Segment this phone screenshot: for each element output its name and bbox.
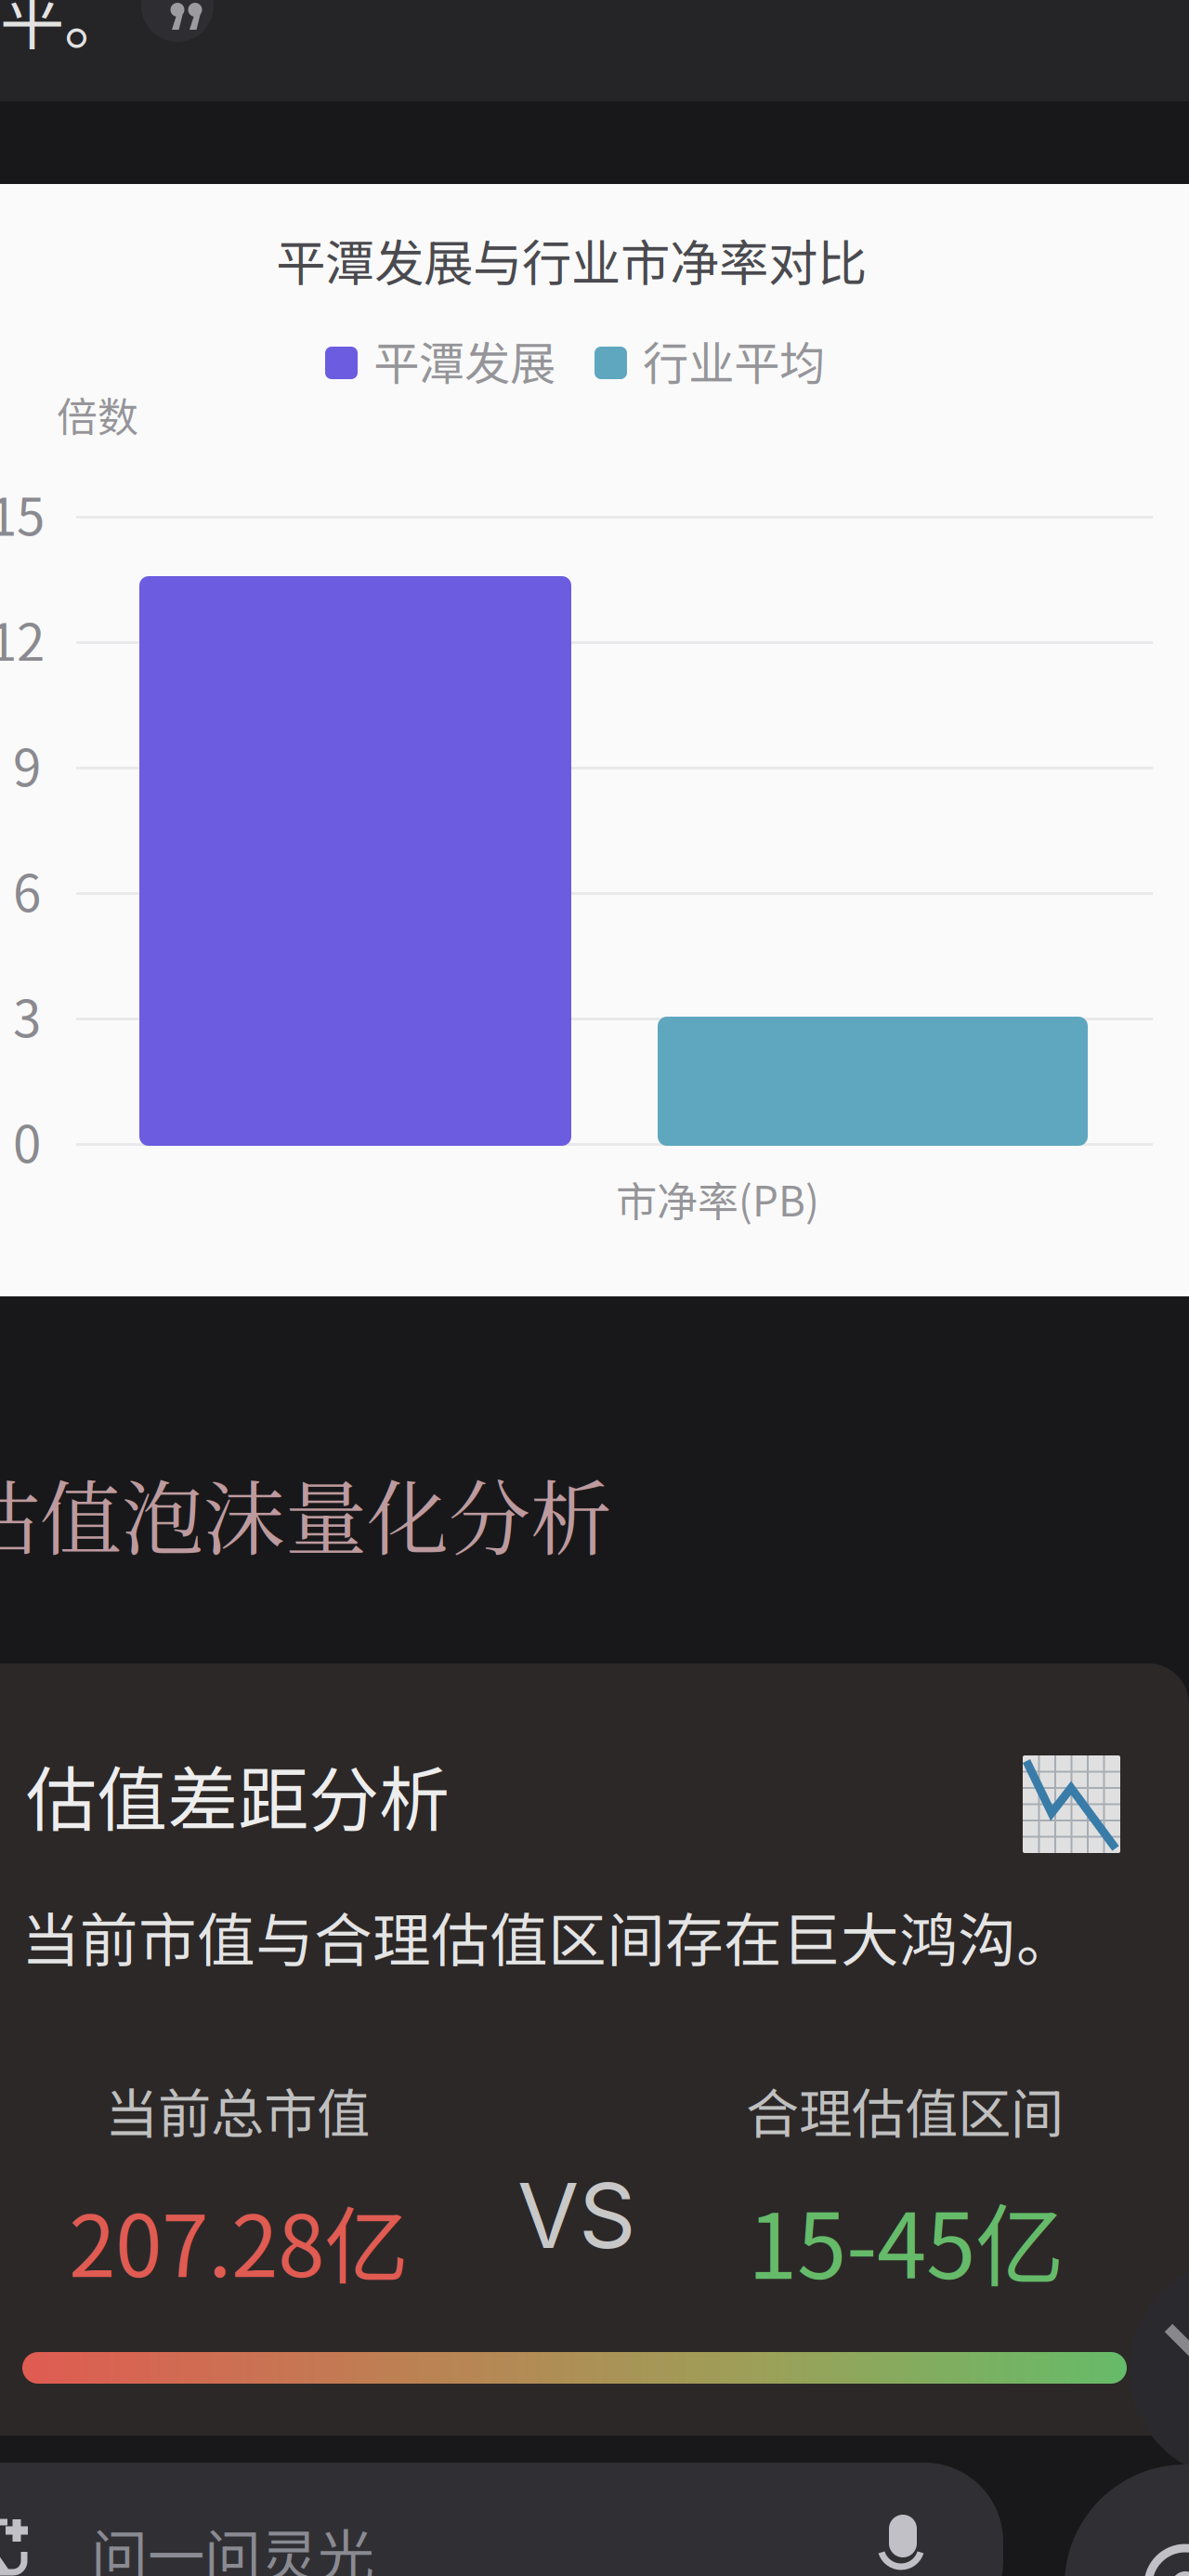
staticText: 合理估值区间 <box>746 2071 1064 2149</box>
button[interactable]: 问一问灵光 <box>0 2463 1003 2576</box>
staticText: 207.28亿 <box>69 2179 409 2301</box>
button[interactable]: Voice input <box>1065 2464 1189 2576</box>
staticText: 9 <box>13 728 41 801</box>
staticText: 当前总市值 <box>105 2071 370 2149</box>
staticText: 平。 <box>0 0 128 63</box>
staticText: 问一问灵光 <box>91 2511 374 2576</box>
staticText: 12 <box>0 602 45 676</box>
staticText: 平潭发展与行业市净率对比 <box>276 224 867 296</box>
staticText: 15 <box>0 477 45 550</box>
staticText: 倍数 <box>57 385 138 444</box>
staticText: 平潭发展 <box>373 327 555 393</box>
button[interactable]: Scroll to bottom <box>1130 2260 1189 2479</box>
staticText: 市净率(PB) <box>616 1169 819 1228</box>
staticText: 行业平均 <box>643 327 825 393</box>
staticText: 估值泡沫量化分析 <box>0 1454 612 1572</box>
staticText: VS <box>517 2162 636 2270</box>
staticText: 估值差距分析 <box>26 1743 450 1846</box>
button[interactable]: Quote <box>141 0 214 42</box>
staticText: 当前市值与合理估值区间存在巨大鸿沟。 <box>21 1894 1075 1978</box>
staticText: 15-45亿 <box>748 2175 1065 2305</box>
staticText: 0 <box>13 1104 41 1178</box>
staticText: 6 <box>13 853 41 927</box>
staticText: 3 <box>13 979 41 1052</box>
